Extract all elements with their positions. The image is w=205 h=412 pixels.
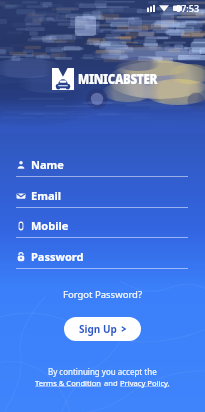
staticText: Name (31, 157, 64, 172)
button[interactable]: Privacy Policy. (120, 378, 170, 388)
staticText: Terms & Condition (35, 378, 102, 388)
staticText: Password (31, 249, 84, 264)
staticText: 07:53 (176, 2, 200, 14)
staticText: Privacy Policy. (120, 378, 170, 388)
button[interactable]: Name (0, 157, 205, 177)
button[interactable]: Mobile (0, 218, 205, 238)
staticText: MINICABSTER (78, 70, 157, 88)
staticText: Mobile (31, 218, 69, 233)
button[interactable]: Email (0, 188, 205, 208)
staticText: By continuing you accept the (48, 366, 157, 377)
button[interactable]: Forgot Password? (57, 286, 149, 303)
staticText: Email (31, 188, 62, 203)
button[interactable]: Terms & Condition (35, 378, 102, 388)
button[interactable]: Password (0, 249, 205, 269)
staticText: Forgot Password? (63, 288, 143, 301)
button[interactable]: Sign Up (64, 317, 141, 341)
staticText: Sign Up (79, 322, 117, 336)
staticText: and (102, 378, 120, 388)
